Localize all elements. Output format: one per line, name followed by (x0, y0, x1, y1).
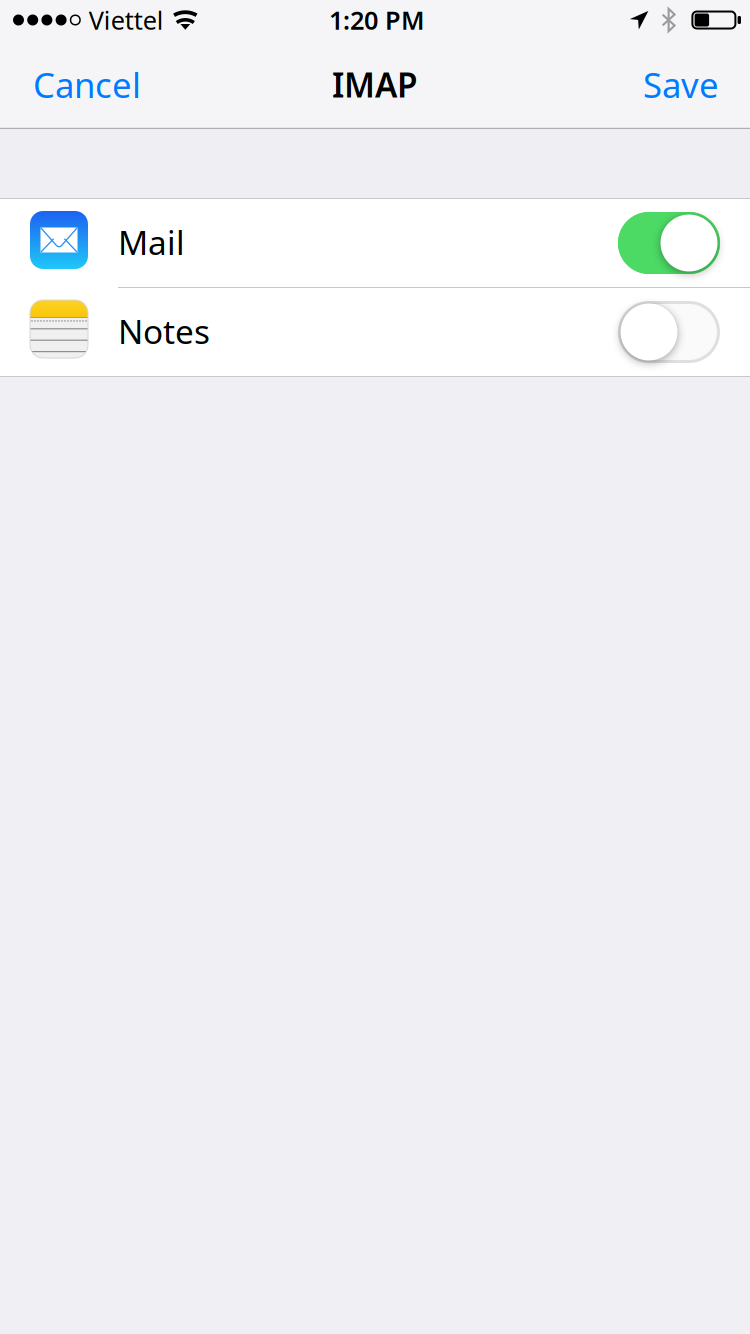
button[interactable]: Save (627, 51, 735, 117)
staticText: 1:20 PM (329, 3, 425, 37)
button[interactable]: Notes, off (618, 301, 750, 363)
staticText: Save (643, 61, 719, 107)
staticText: Notes (118, 309, 210, 353)
staticText: IMAP (332, 62, 418, 107)
staticText: Viettel (89, 3, 164, 37)
button[interactable]: Cancel (17, 51, 157, 117)
staticText: Mail (118, 220, 185, 264)
button[interactable]: Mail, on (618, 212, 750, 274)
staticText: Cancel (33, 61, 141, 107)
